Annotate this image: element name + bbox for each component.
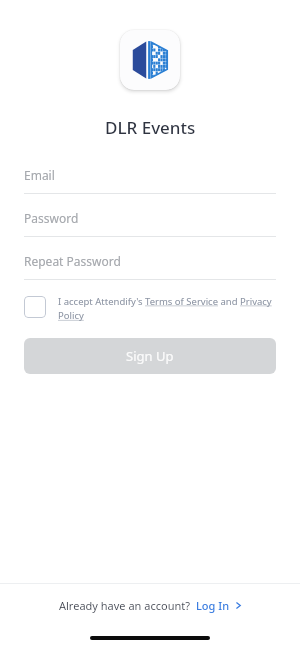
other: Accept terms checkbox	[24, 296, 46, 318]
staticText: Log In	[196, 598, 230, 613]
staticText: I accept Attendify's Terms of Service an…	[58, 295, 276, 322]
button[interactable]: Repeat Password	[24, 253, 276, 280]
staticText: Email	[24, 167, 55, 183]
button[interactable]: Sign Up	[24, 338, 276, 374]
staticText: Already have an account?	[59, 598, 190, 613]
staticText: Password	[24, 210, 79, 226]
staticText: Repeat Password	[24, 253, 121, 269]
button[interactable]: Already have an account?	[51, 592, 250, 619]
button[interactable]: Accept terms checkbox	[24, 295, 276, 322]
staticText: Sign Up	[126, 347, 174, 365]
other: App logo	[120, 30, 180, 90]
button[interactable]: Email	[24, 167, 276, 194]
button[interactable]: Password	[24, 210, 276, 237]
staticText: DLR Events	[105, 116, 196, 139]
